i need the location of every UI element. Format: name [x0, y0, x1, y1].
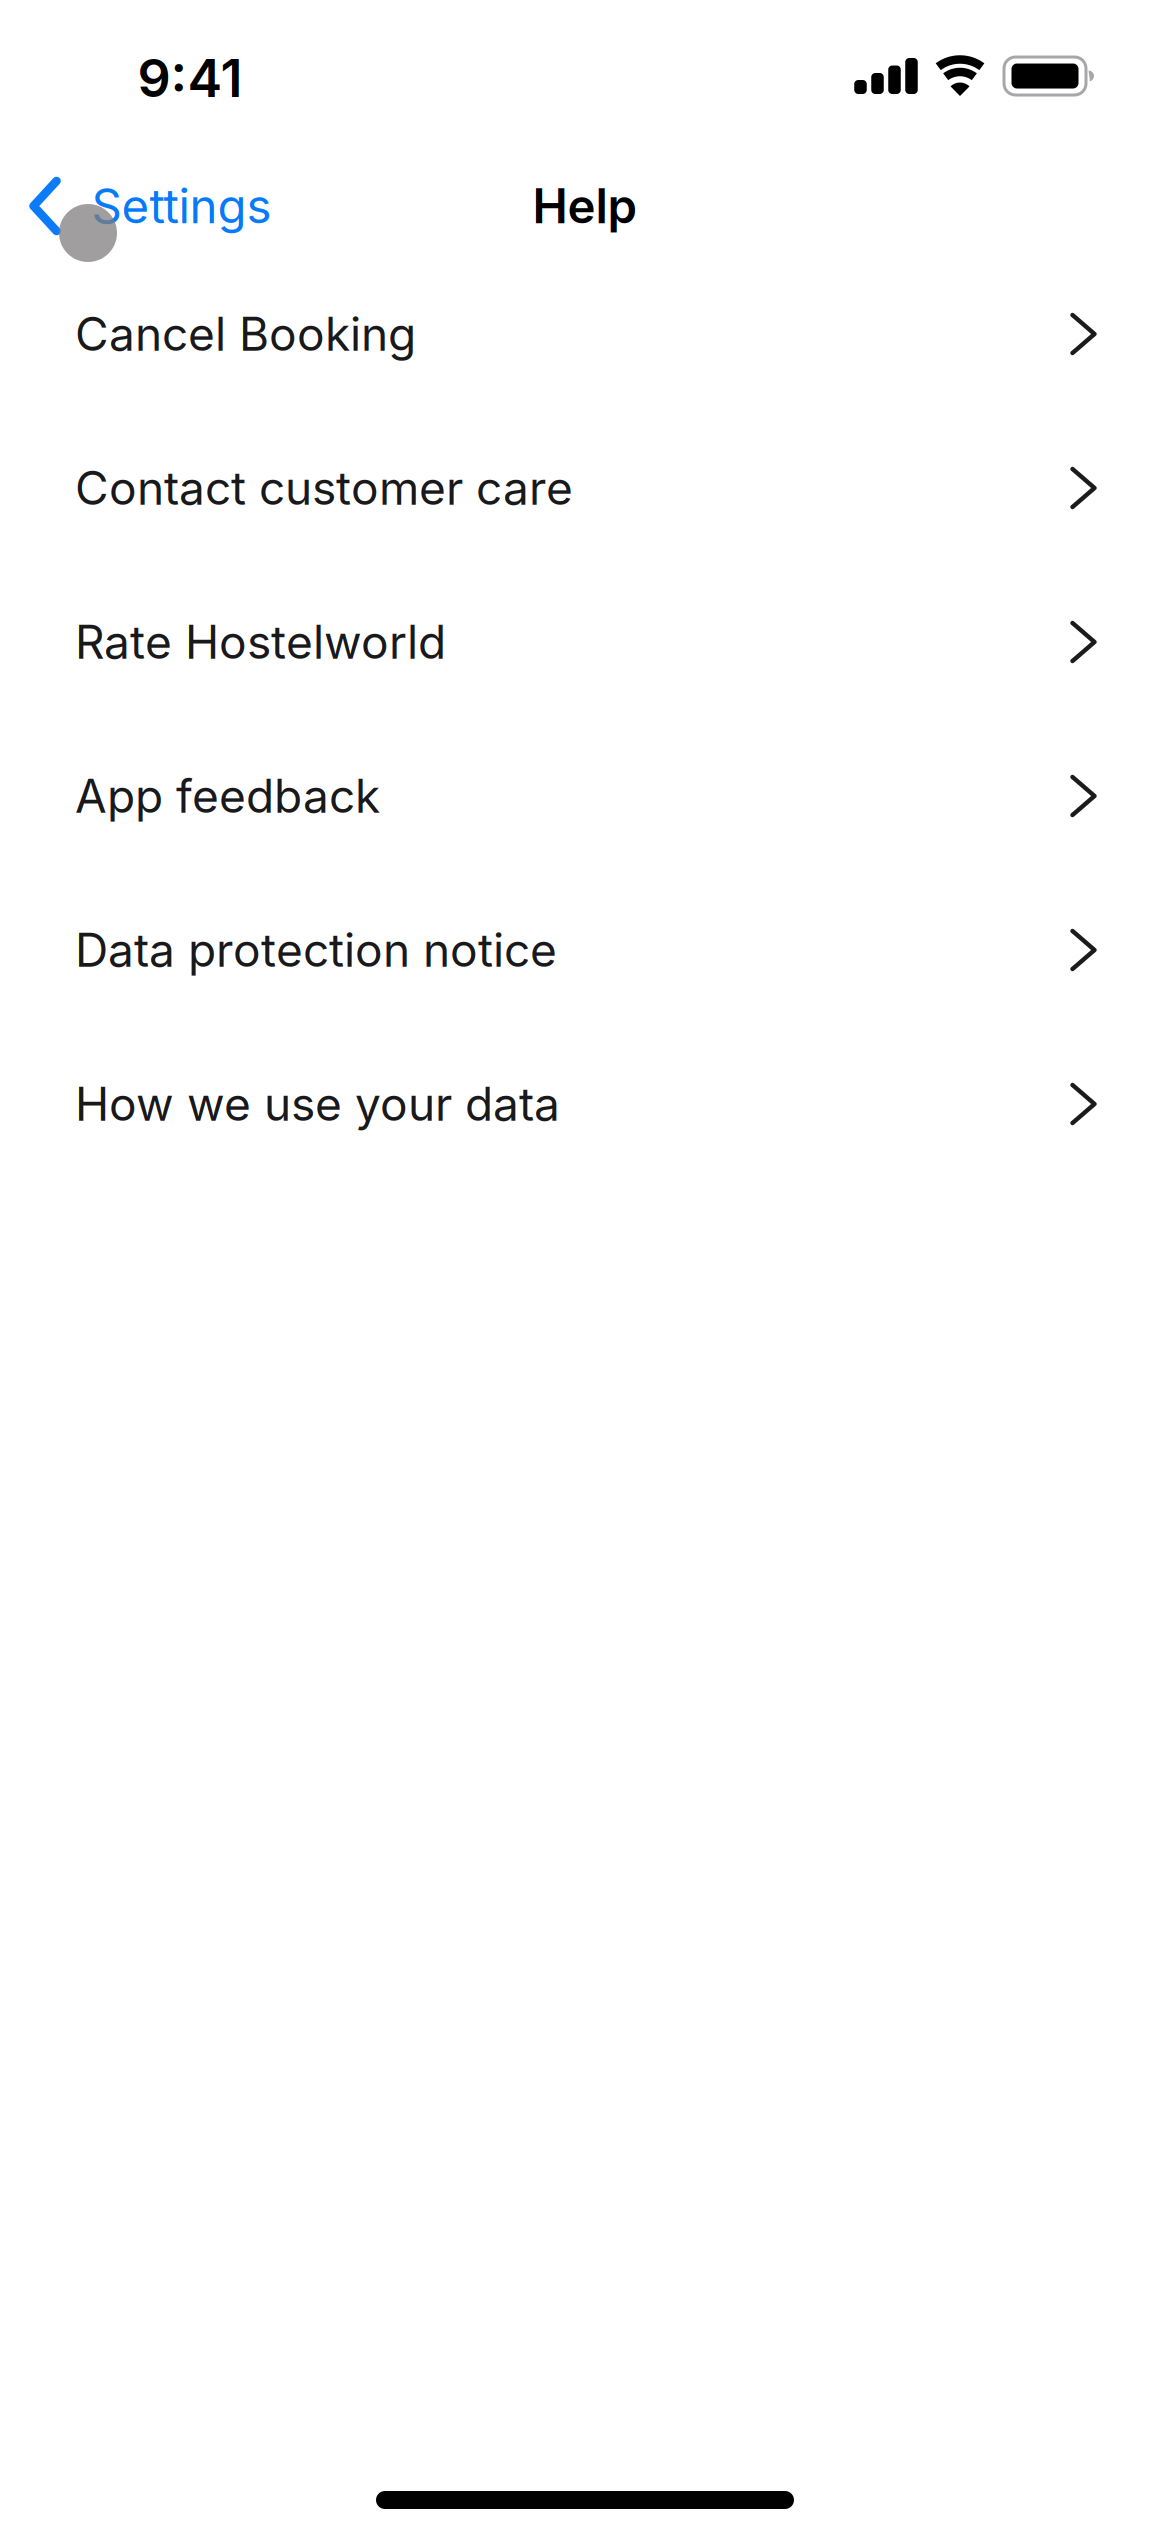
- button[interactable]: Cancel Booking: [0, 257, 1170, 411]
- button[interactable]: Rate Hostelworld: [0, 565, 1170, 719]
- button[interactable]: How we use your data: [0, 1027, 1170, 1181]
- staticText: Rate Hostelworld: [75, 614, 446, 670]
- staticText: Settings: [91, 177, 271, 235]
- staticText: App feedback: [75, 768, 380, 824]
- staticText: Help: [532, 177, 637, 235]
- button[interactable]: Contact customer care: [0, 411, 1170, 565]
- staticText: Data protection notice: [75, 922, 557, 978]
- button[interactable]: Back to Settings: [28, 177, 271, 235]
- staticText: Cancel Booking: [75, 306, 416, 362]
- staticText: How we use your data: [75, 1076, 560, 1132]
- button[interactable]: App feedback: [0, 719, 1170, 873]
- staticText: 9:41: [137, 46, 242, 109]
- staticText: Contact customer care: [75, 460, 573, 516]
- button[interactable]: Data protection notice: [0, 873, 1170, 1027]
